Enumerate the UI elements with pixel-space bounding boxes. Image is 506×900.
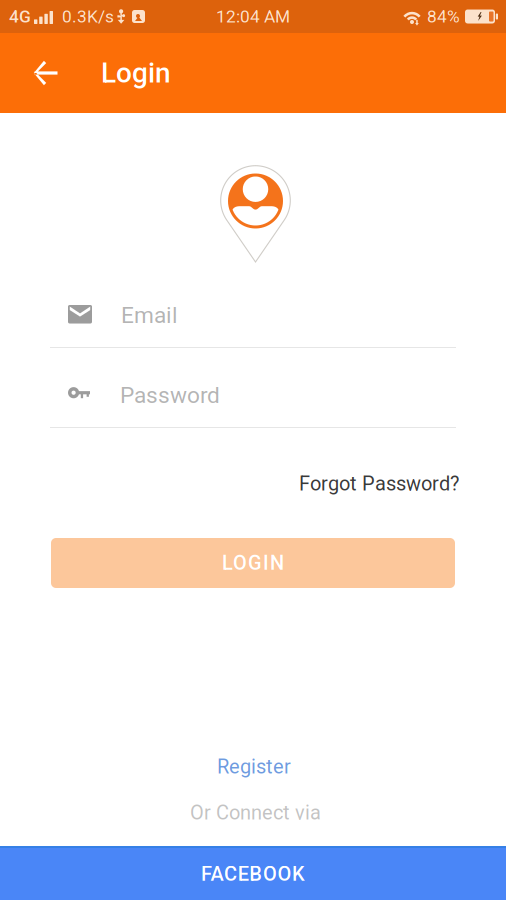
button[interactable]: FACEBOOK [0,846,506,900]
staticText: Forgot Password? [299,472,459,495]
staticText: Login [101,57,171,89]
staticText: Or Connect via [190,801,321,824]
staticText: Password [120,382,220,409]
staticText: 4G [9,6,31,27]
staticText: 0.3K/s [62,6,114,27]
button[interactable]: Register [215,755,293,778]
staticText: 12:04 AM [216,6,290,27]
button[interactable]: Back [20,47,70,99]
button[interactable]: LOGIN [51,538,455,588]
staticText: Register [217,755,291,778]
staticText: Email [121,302,178,329]
button[interactable]: Forgot Password? [297,472,461,495]
staticText: FACEBOOK [201,862,305,886]
staticText: LOGIN [222,551,284,575]
staticText: 84% [427,6,460,27]
